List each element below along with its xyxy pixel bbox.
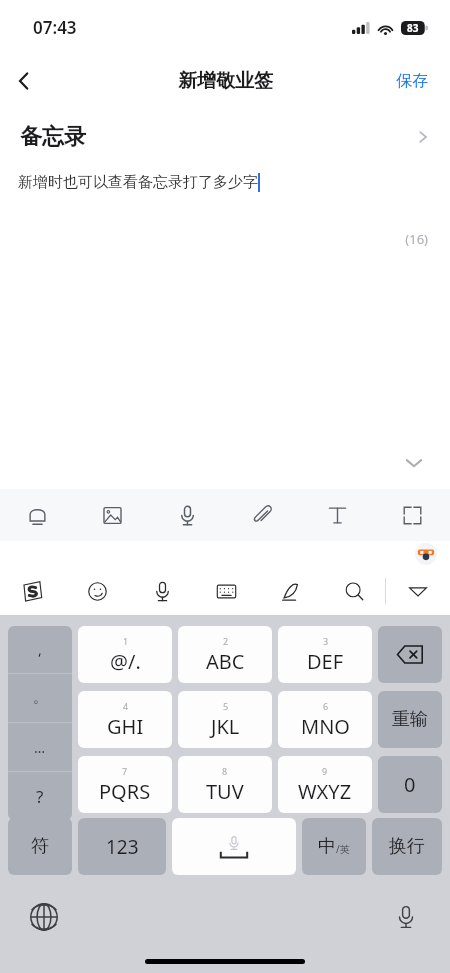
staticText: 9 (322, 765, 328, 777)
button[interactable]: , (8, 626, 72, 673)
button[interactable]: Search (322, 567, 386, 615)
button[interactable]: Attachment (225, 489, 300, 541)
staticText: 0 (404, 771, 416, 798)
button[interactable]: 换行 (372, 818, 442, 875)
staticText: 7 (122, 765, 128, 777)
button[interactable]: Emoji (65, 567, 130, 615)
staticText: 3 (323, 635, 329, 647)
staticText: 1 (123, 635, 129, 647)
button[interactable]: 7 (78, 756, 172, 813)
button[interactable]: Collapse (394, 443, 434, 483)
button[interactable]: 0 (378, 756, 442, 813)
button[interactable]: 保存 (384, 63, 440, 99)
staticText: MNO (301, 713, 350, 740)
button[interactable]: 中 (302, 818, 366, 875)
button[interactable]: Voice input (130, 567, 194, 615)
staticText: 5 (223, 700, 229, 712)
button[interactable]: 123 (78, 818, 166, 875)
staticText: 2 (223, 635, 229, 647)
staticText: 备忘录 (20, 123, 86, 151)
button[interactable]: Full screen (375, 489, 450, 541)
button[interactable]: 9 (278, 756, 372, 813)
button[interactable]: Assistant (414, 542, 438, 566)
button[interactable]: 3 (278, 626, 372, 683)
button[interactable]: Voice input (388, 899, 424, 935)
staticText: 保存 (396, 71, 428, 91)
button[interactable]: 符 (8, 818, 72, 875)
staticText: 8 (222, 765, 228, 777)
staticText: 83 (407, 21, 419, 35)
staticText: 07:43 (33, 16, 77, 39)
button[interactable]: 4 (78, 691, 172, 748)
button[interactable]: Handwriting (258, 567, 322, 615)
staticText: PQRS (99, 778, 151, 805)
staticText: 新增敬业签 (178, 69, 273, 93)
button[interactable]: 8 (178, 756, 272, 813)
button[interactable]: Voice (150, 489, 225, 541)
button[interactable]: Delete (378, 626, 442, 683)
button[interactable]: … (8, 723, 72, 771)
button[interactable]: Back (0, 57, 48, 105)
staticText: 新增时也可以查看备忘录打了多少字 (18, 173, 258, 192)
staticText: 重输 (392, 708, 428, 731)
staticText: 123 (106, 834, 139, 860)
staticText: TUV (206, 778, 244, 805)
staticText: , (38, 640, 42, 659)
staticText: GHI (107, 713, 144, 740)
staticText: 中 (318, 835, 336, 858)
button[interactable]: 备忘录 (0, 115, 450, 159)
button[interactable]: Switch language (26, 899, 62, 935)
button[interactable]: Keyboard (194, 567, 258, 615)
staticText: JKL (211, 713, 240, 740)
staticText: 符 (31, 835, 49, 858)
staticText: 4 (123, 700, 129, 712)
staticText: 6 (323, 700, 329, 712)
button[interactable]: Reminder (0, 489, 75, 541)
button[interactable]: Image (75, 489, 150, 541)
button[interactable]: ? (8, 772, 72, 820)
staticText: (16) (0, 230, 428, 248)
staticText: 。 (33, 689, 47, 707)
staticText: ABC (206, 648, 245, 675)
button[interactable]: Hide keyboard (386, 567, 450, 615)
staticText: @/. (110, 648, 141, 675)
button[interactable]: Text style (300, 489, 375, 541)
button[interactable]: Sogou (0, 567, 65, 615)
staticText: … (34, 738, 46, 757)
staticText: DEF (307, 648, 344, 675)
button[interactable]: 1 (78, 626, 172, 683)
button[interactable]: Space (172, 818, 296, 875)
button[interactable]: 6 (278, 691, 372, 748)
staticText: ? (36, 785, 44, 808)
button[interactable]: 重输 (378, 691, 442, 748)
staticText: /英 (336, 842, 350, 856)
button[interactable]: 5 (178, 691, 272, 748)
staticText: 换行 (389, 835, 425, 858)
button[interactable]: 2 (178, 626, 272, 683)
staticText: WXYZ (298, 778, 352, 805)
